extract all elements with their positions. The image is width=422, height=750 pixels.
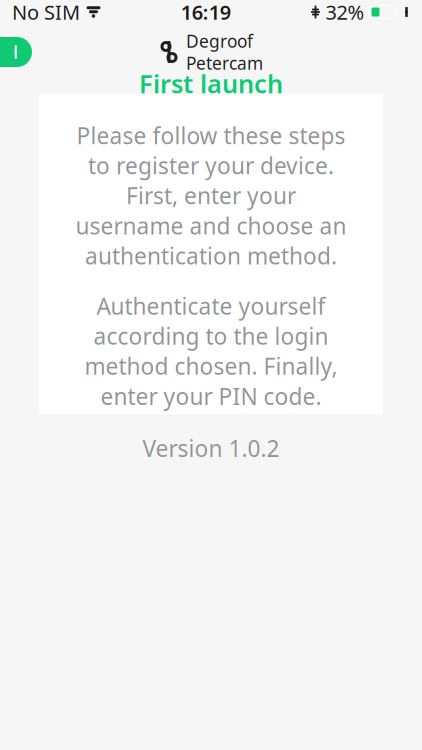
staticText: authentication method. bbox=[85, 241, 337, 271]
staticText: method chosen. Finally, bbox=[84, 351, 337, 381]
button[interactable]: Back bbox=[0, 37, 32, 67]
staticText: Version 1.0.2 bbox=[142, 433, 279, 463]
staticText: Please follow these steps bbox=[76, 120, 345, 150]
staticText: First launch bbox=[139, 67, 283, 100]
staticText: Degroof bbox=[186, 29, 253, 52]
staticText: to register your device. bbox=[88, 150, 334, 180]
staticText: 32% bbox=[325, 0, 364, 25]
staticText: Authenticate yourself bbox=[96, 291, 325, 321]
staticText: No SIM bbox=[12, 0, 80, 25]
staticText: 16:19 bbox=[181, 0, 231, 25]
staticText: Petercam bbox=[186, 51, 263, 74]
staticText: username and choose an bbox=[75, 211, 346, 241]
staticText: enter your PIN code. bbox=[100, 381, 321, 411]
staticText: First, enter your bbox=[126, 180, 296, 211]
staticText: according to the login bbox=[93, 321, 328, 351]
